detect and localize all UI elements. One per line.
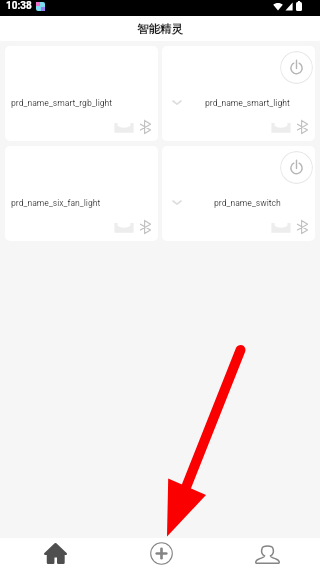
button[interactable]: Power <box>280 151 313 184</box>
staticText: prd_name_six_fan_light <box>11 198 101 208</box>
button[interactable]: prd_name_smart_rgb_light <box>5 46 158 141</box>
button[interactable]: prd_name_six_fan_light <box>5 146 158 241</box>
button[interactable]: Profile <box>214 538 320 568</box>
staticText: prd_name_smart_light <box>205 98 290 108</box>
button[interactable]: Power <box>162 46 315 141</box>
staticText: prd_name_switch <box>214 198 281 208</box>
button[interactable]: Power <box>162 146 315 241</box>
staticText: 10:38 <box>6 0 32 12</box>
button[interactable]: Add device <box>108 538 214 568</box>
button[interactable]: Power <box>280 51 313 84</box>
staticText: 智能精灵 <box>137 22 183 36</box>
button[interactable]: Home <box>3 538 108 568</box>
staticText: prd_name_smart_rgb_light <box>11 98 113 108</box>
